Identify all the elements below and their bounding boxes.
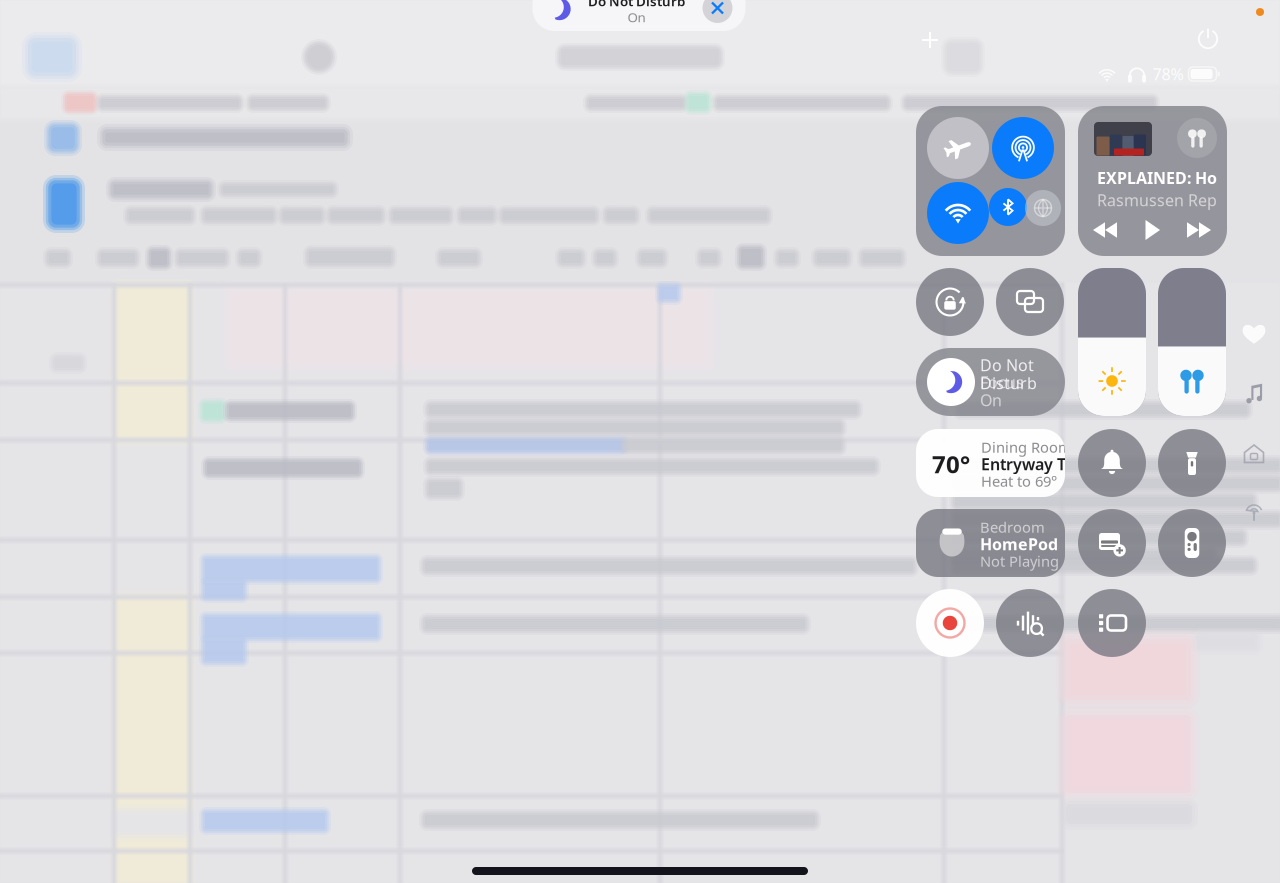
button[interactable]: Picture in Picture [1078, 589, 1146, 657]
staticText: Heat to 69° [981, 471, 1057, 491]
button[interactable]: Entryway Thermostat [916, 429, 1065, 497]
button[interactable]: Wi-Fi [927, 182, 989, 244]
button[interactable]: Bluetooth [989, 188, 1027, 226]
staticText: Dining Room [981, 437, 1072, 457]
button[interactable]: Quick Note [1078, 509, 1146, 577]
button[interactable]: AirDrop [992, 117, 1054, 179]
staticText: On [627, 8, 645, 26]
staticText: EXPLAINED: Ho [1097, 167, 1217, 188]
button[interactable]: AirPlay [1234, 492, 1274, 532]
button[interactable]: Airplane Mode [927, 117, 989, 179]
button[interactable]: Play [1139, 217, 1165, 243]
staticText: 78% [1152, 63, 1183, 85]
button[interactable]: Alarm [1078, 429, 1146, 497]
staticText: Disturb [980, 372, 1037, 394]
button[interactable]: Apple TV Remote [1158, 509, 1226, 577]
staticText: Focus [980, 371, 1024, 393]
staticText: Bedroom [980, 517, 1045, 537]
button[interactable]: Power [1191, 22, 1225, 56]
button[interactable]: Flashlight [1158, 429, 1226, 497]
button[interactable]: Music Recognition [996, 589, 1064, 657]
button[interactable]: Cellular Data [1025, 190, 1061, 226]
staticText: Do Not [980, 354, 1034, 376]
button[interactable]: Screen Record [916, 589, 984, 657]
staticText: On [980, 389, 1002, 411]
staticText: Entryway Th [981, 453, 1076, 475]
button[interactable]: Rewind [1091, 219, 1119, 241]
button[interactable]: Volume [1158, 268, 1226, 416]
staticText: Rasmussen Rep [1097, 189, 1217, 211]
button[interactable]: Audio Output [1177, 118, 1217, 158]
staticText: Do Not Disturb [588, 0, 685, 10]
button[interactable]: Do Not Disturb [916, 348, 1065, 416]
button[interactable]: Do Not Disturb On [532, 0, 745, 31]
button[interactable]: Add [915, 25, 945, 55]
button[interactable]: Brightness [1078, 268, 1146, 416]
button[interactable]: Fast Forward [1185, 219, 1213, 241]
button[interactable]: Music [1234, 374, 1274, 414]
staticText: 70° [932, 448, 970, 480]
button[interactable]: Screen Mirroring [996, 268, 1064, 336]
staticText: Not Playing [980, 551, 1059, 571]
button[interactable]: Bedroom HomePod [916, 509, 1065, 577]
button[interactable]: Health [1234, 314, 1274, 354]
button[interactable]: Home [1234, 434, 1274, 474]
button[interactable]: Rotation Lock [916, 268, 984, 336]
staticText: HomePod [980, 533, 1058, 555]
